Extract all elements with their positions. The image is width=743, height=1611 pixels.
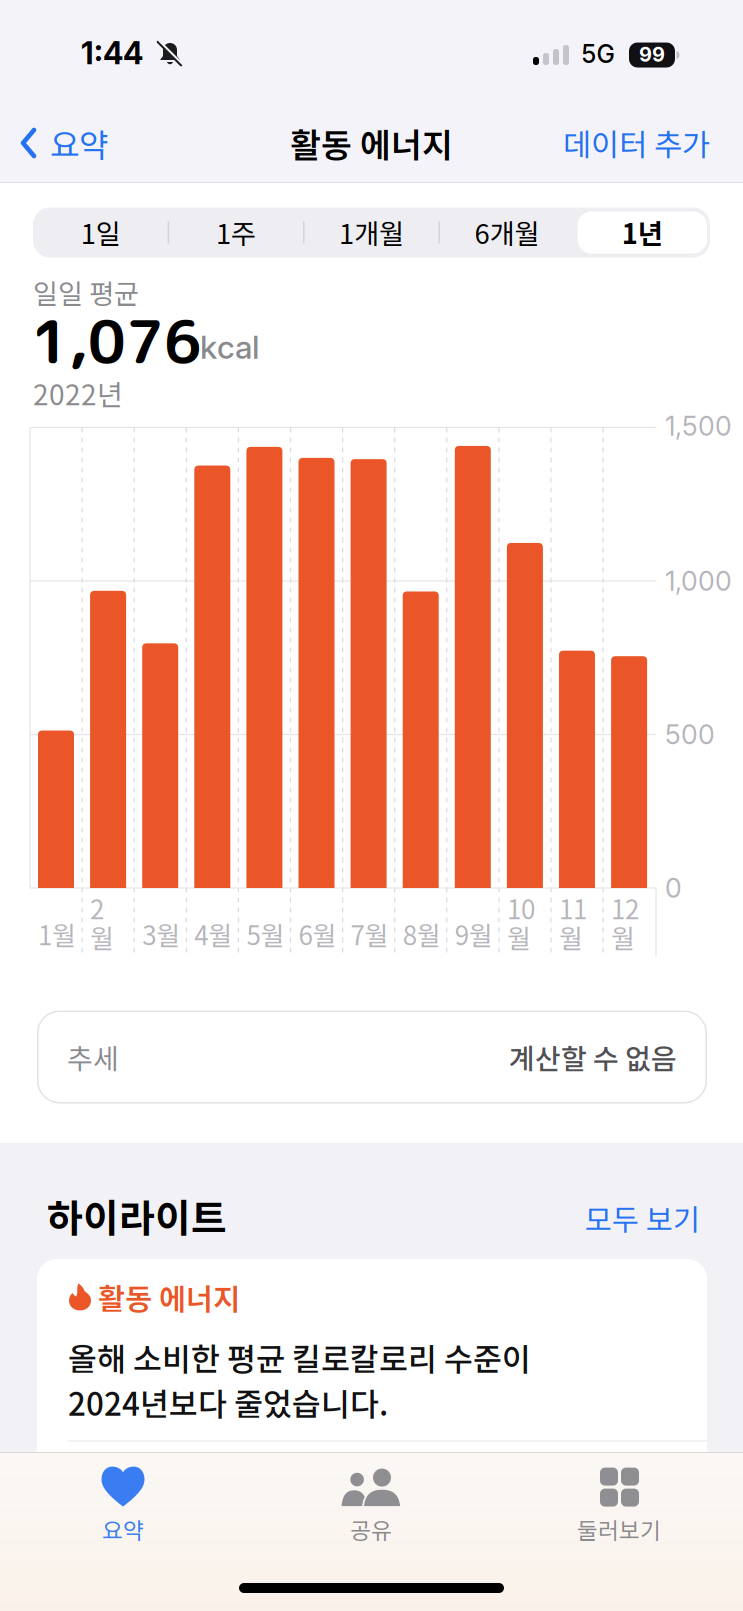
staticText: 6월 bbox=[298, 915, 336, 953]
staticText: 월 bbox=[559, 918, 583, 956]
staticText: 9월 bbox=[455, 915, 493, 953]
staticText: 2022년 bbox=[33, 373, 123, 413]
staticText: 둘러보기 bbox=[577, 1513, 661, 1545]
staticText: 1일 bbox=[81, 212, 121, 252]
staticText: 5월 bbox=[246, 915, 284, 953]
staticText: 1주 bbox=[216, 212, 256, 252]
staticText: 11 bbox=[559, 889, 587, 927]
staticText: 7월 bbox=[351, 915, 389, 953]
button[interactable]: 데이터 추가 bbox=[530, 118, 710, 168]
staticText: 1,500 bbox=[665, 410, 732, 442]
button[interactable]: 1주 bbox=[172, 210, 300, 254]
staticText: 활동 에너지 bbox=[290, 119, 453, 167]
button[interactable]: 1년 bbox=[579, 210, 706, 254]
staticText: 하이라이트 bbox=[47, 1188, 227, 1244]
button[interactable]: 1일 bbox=[37, 210, 164, 254]
staticText: 활동 에너지 bbox=[98, 1276, 240, 1318]
staticText: 월 bbox=[611, 918, 635, 956]
staticText: 1월 bbox=[38, 915, 76, 953]
staticText: 10 bbox=[507, 889, 535, 927]
button[interactable]: 추세 bbox=[37, 1010, 707, 1103]
button[interactable]: 1개월 bbox=[308, 210, 435, 254]
button[interactable]: 6개월 bbox=[443, 210, 571, 254]
staticText: kcal bbox=[200, 328, 259, 366]
staticText: 500 bbox=[665, 718, 715, 751]
button[interactable]: 요약 bbox=[43, 1466, 203, 1546]
staticText: 월 bbox=[507, 918, 531, 956]
staticText: 1,000 bbox=[665, 565, 732, 597]
staticText: 6개월 bbox=[474, 212, 539, 252]
staticText: 요약 bbox=[50, 120, 108, 166]
staticText: 8월 bbox=[403, 915, 441, 953]
staticText: 99 bbox=[639, 42, 665, 67]
staticText: 1:44 bbox=[81, 34, 143, 71]
staticText: 2024년보다 줄었습니다. bbox=[68, 1379, 388, 1425]
staticText: 월 bbox=[90, 918, 114, 956]
staticText: 3월 bbox=[142, 915, 180, 953]
staticText: 2 bbox=[90, 889, 104, 927]
staticText: 데이터 추가 bbox=[563, 121, 710, 165]
staticText: 올해 소비한 평균 킬로칼로리 수준이 bbox=[68, 1334, 531, 1380]
staticText: 4월 bbox=[194, 915, 232, 953]
button[interactable]: 공유 bbox=[291, 1466, 451, 1546]
staticText: 모두 보기 bbox=[585, 1197, 700, 1239]
staticText: 1,076 bbox=[31, 300, 202, 382]
staticText: 0 bbox=[665, 872, 682, 904]
staticText: 1년 bbox=[622, 212, 663, 252]
staticText: 공유 bbox=[350, 1513, 392, 1545]
staticText: 추세 bbox=[67, 1037, 119, 1077]
staticText: 5G bbox=[581, 39, 614, 69]
button[interactable]: 둘러보기 bbox=[539, 1466, 699, 1546]
staticText: 12 bbox=[611, 889, 639, 927]
button[interactable]: 모두 보기 bbox=[500, 1196, 700, 1240]
staticText: 요약 bbox=[102, 1513, 144, 1545]
button[interactable]: 요약 bbox=[20, 118, 140, 168]
staticText: 1개월 bbox=[339, 212, 404, 252]
staticText: 일일 평균 bbox=[33, 272, 139, 312]
button[interactable]: 활동 에너지 bbox=[37, 1259, 707, 1519]
staticText: 계산할 수 없음 bbox=[509, 1037, 677, 1077]
